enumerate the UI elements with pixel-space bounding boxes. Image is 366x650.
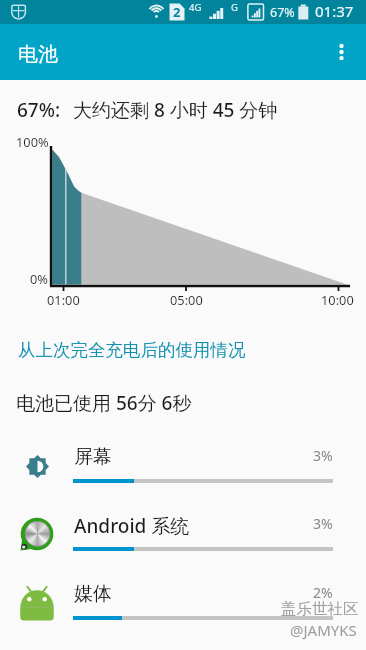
staticText: 67%:	[17, 97, 61, 123]
staticText: 电池	[18, 42, 58, 67]
button[interactable]: Android 系统	[0, 499, 366, 567]
staticText: 10:00	[321, 291, 354, 308]
staticText: 屏幕	[74, 445, 112, 469]
button[interactable]: More options	[319, 24, 364, 80]
staticText: 3%	[313, 446, 333, 465]
button[interactable]: 屏幕	[0, 431, 366, 499]
staticText: 2	[173, 3, 181, 21]
staticText: 01:37	[315, 1, 354, 21]
staticText: 从上次完全充电后的使用情况	[18, 339, 246, 361]
staticText: G	[231, 1, 238, 14]
staticText: 3%	[313, 514, 333, 533]
staticText: 100%	[16, 133, 49, 150]
staticText: 0%	[30, 270, 48, 287]
staticText: @JAMYKS	[290, 620, 357, 640]
staticText: 05:00	[170, 291, 203, 308]
staticText: 67%	[270, 4, 295, 21]
staticText: 大约还剩 8 小时 45 分钟	[73, 97, 278, 123]
staticText: 4G	[189, 1, 202, 14]
button[interactable]: 媒体	[0, 568, 366, 636]
staticText: 媒体	[74, 582, 112, 606]
staticText: 01:00	[47, 291, 80, 308]
staticText: 盖乐世社区	[281, 599, 359, 619]
staticText: Android 系统	[74, 513, 190, 539]
staticText: 电池已使用 56分 6秒	[16, 390, 192, 416]
staticText: 2%	[313, 583, 333, 602]
